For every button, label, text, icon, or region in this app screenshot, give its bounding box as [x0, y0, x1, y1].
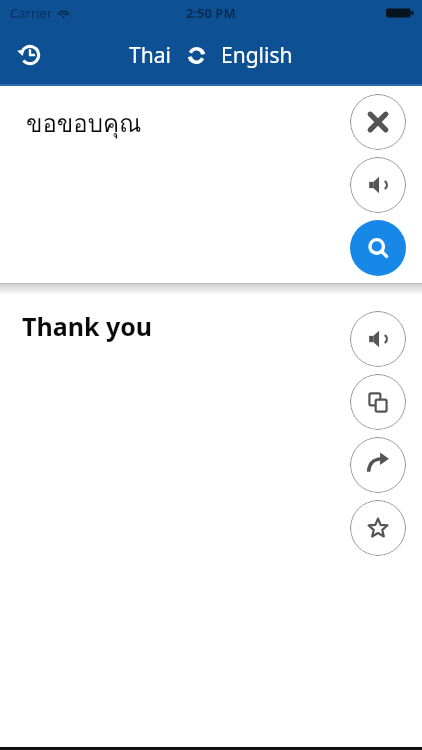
- staticText: ขอขอบคุณ: [26, 104, 142, 142]
- staticText: 2:50 PM: [186, 4, 236, 22]
- button[interactable]: History: [8, 33, 52, 77]
- button[interactable]: Copy: [350, 374, 406, 430]
- staticText: Thai: [129, 41, 171, 70]
- staticText: English: [221, 41, 293, 70]
- button[interactable]: Swap languages: [177, 36, 215, 74]
- staticText: Carrier: [10, 4, 53, 22]
- button[interactable]: Share: [350, 437, 406, 493]
- button[interactable]: Speak translation: [350, 311, 406, 367]
- button[interactable]: Add to favourites: [350, 500, 406, 556]
- button[interactable]: Speak source text: [350, 157, 406, 213]
- button[interactable]: Clear text: [350, 94, 406, 150]
- button[interactable]: Translate: [350, 220, 406, 276]
- button[interactable]: English: [215, 37, 299, 74]
- staticText: Thank you: [22, 309, 153, 343]
- button[interactable]: Thai: [123, 37, 177, 74]
